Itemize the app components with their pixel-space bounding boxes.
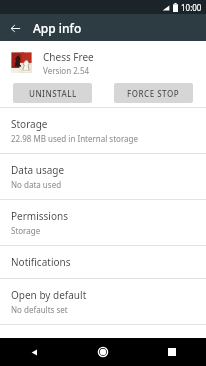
staticText: 22.98 MB used in Internal storage [11, 133, 138, 144]
button[interactable]: Permissions [0, 200, 206, 245]
staticText: FORCE STOP [127, 88, 180, 99]
button[interactable]: UNINSTALL [13, 83, 92, 103]
button[interactable]: Home [68, 338, 137, 366]
staticText: Version 2.54 [43, 65, 90, 76]
button[interactable]: Recent apps [137, 338, 206, 366]
staticText: Chess Free [43, 50, 94, 64]
staticText: UNINSTALL [29, 88, 77, 99]
staticText: Notifications [11, 255, 71, 269]
staticText: Storage [11, 117, 48, 131]
staticText: Open by default [11, 288, 87, 302]
button[interactable]: Back [0, 338, 68, 366]
button[interactable]: Notifications [0, 246, 206, 278]
button[interactable]: Back [6, 19, 24, 37]
button[interactable]: Chess Free [0, 46, 206, 79]
button[interactable]: FORCE STOP [114, 83, 193, 103]
staticText: App info [33, 20, 82, 36]
button[interactable]: Open by default [0, 279, 206, 324]
button[interactable]: Data usage [0, 154, 206, 199]
staticText: No defaults set [11, 304, 68, 315]
staticText: Permissions [11, 209, 68, 223]
button[interactable]: Storage [0, 108, 206, 153]
staticText: Data usage [11, 163, 65, 177]
staticText: 10:00 [181, 2, 202, 13]
staticText: Storage [11, 225, 41, 236]
staticText: No data used [11, 179, 62, 190]
